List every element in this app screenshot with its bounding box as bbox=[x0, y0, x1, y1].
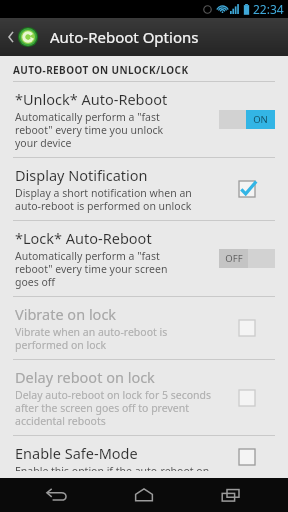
button[interactable]: Checkbox bbox=[236, 446, 258, 468]
staticText: Vibrate on lock bbox=[15, 304, 117, 324]
staticText: Automatically perform a "fast reboot" ev… bbox=[15, 249, 168, 289]
button[interactable]: Toggle off bbox=[219, 249, 275, 268]
staticText: OFF bbox=[225, 252, 243, 265]
button[interactable]: *Unlock* Auto-Reboot bbox=[0, 82, 288, 157]
button[interactable]: Toggle on bbox=[219, 110, 275, 129]
staticText: 22:34 bbox=[253, 1, 284, 17]
button[interactable]: Navigate up bbox=[4, 26, 42, 48]
button[interactable]: Display Notification bbox=[0, 158, 288, 220]
button[interactable]: Delay reboot on lock bbox=[0, 360, 288, 435]
button[interactable]: Vibrate on lock bbox=[0, 297, 288, 359]
button[interactable]: Recent apps bbox=[201, 478, 261, 512]
staticText: AUTO-REBOOT ON UNLOCK/LOCK bbox=[13, 63, 189, 77]
button[interactable]: Checkbox bbox=[236, 317, 258, 339]
staticText: *Unlock* Auto-Reboot bbox=[15, 89, 168, 109]
staticText: Display Notification bbox=[15, 165, 148, 185]
staticText: *Lock* Auto-Reboot bbox=[15, 228, 152, 248]
staticText: Delay reboot on lock bbox=[15, 367, 155, 387]
staticText: Vibrate when an auto-reboot is performed… bbox=[15, 325, 168, 352]
button[interactable]: Back bbox=[27, 478, 87, 512]
staticText: Automatically perform a "fast reboot" ev… bbox=[15, 110, 164, 150]
staticText: Auto-Reboot Options bbox=[50, 27, 199, 47]
button[interactable]: Checkbox bbox=[236, 178, 258, 200]
staticText: Enable Safe-Mode bbox=[15, 443, 138, 463]
button[interactable]: Home bbox=[114, 478, 174, 512]
button[interactable]: Checkbox bbox=[236, 387, 258, 409]
staticText: Display a short notification when an aut… bbox=[15, 186, 192, 213]
staticText: Delay auto-reboot on lock for 5 seconds … bbox=[15, 388, 212, 428]
staticText: ON bbox=[253, 113, 268, 126]
button[interactable]: Enable Safe-Mode bbox=[0, 436, 288, 478]
staticText: Enable this option if the auto-reboot on… bbox=[15, 464, 210, 471]
button[interactable]: *Lock* Auto-Reboot bbox=[0, 221, 288, 296]
